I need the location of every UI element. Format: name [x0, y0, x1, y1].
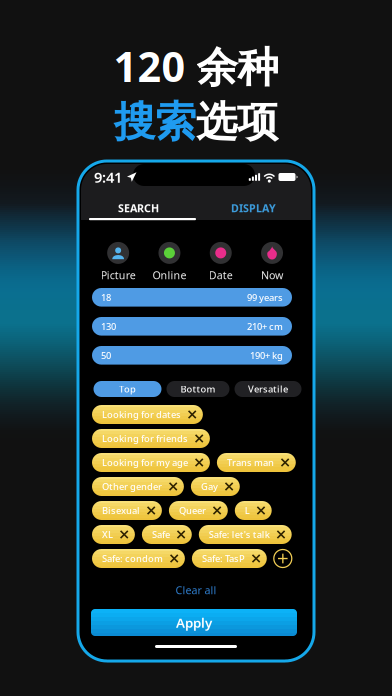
staticText: DISPLAY [231, 201, 276, 215]
button[interactable]: Add filter [274, 549, 292, 567]
staticText: 210+ cm [247, 320, 283, 332]
button[interactable]: Online [144, 245, 195, 279]
staticText: Top [119, 383, 136, 395]
button[interactable]: Bisexual [92, 501, 162, 520]
staticText: Online [152, 268, 186, 282]
staticText: Bisexual [102, 504, 140, 517]
staticText: Versatile [248, 383, 288, 395]
button[interactable]: Date [195, 245, 246, 279]
staticText: Looking for dates [102, 408, 181, 421]
staticText: SEARCH [118, 201, 159, 215]
staticText: Now [261, 268, 283, 282]
button[interactable]: Safe: TasP [192, 549, 267, 568]
button[interactable]: Safe: condom [92, 549, 185, 568]
staticText: Bottom [180, 383, 215, 395]
staticText: Picture [101, 268, 136, 282]
button[interactable]: Versatile [234, 381, 301, 397]
staticText: 50 [101, 349, 111, 361]
staticText: Looking for friends [102, 432, 188, 445]
button[interactable]: Bottom [166, 381, 229, 397]
staticText: 120 余种 [113, 39, 278, 93]
staticText: 130 [101, 320, 116, 332]
button[interactable]: Gay [191, 477, 240, 496]
staticText: 选项 [196, 97, 278, 147]
staticText: Date [209, 268, 233, 282]
staticText: Apply [176, 614, 212, 631]
button[interactable]: Clear all [81, 584, 311, 596]
button[interactable]: L [235, 501, 272, 520]
button[interactable]: 130 [92, 317, 292, 336]
button[interactable]: Looking for my age [92, 453, 210, 472]
button[interactable]: 50 [92, 346, 292, 365]
staticText: Safe: condom [102, 552, 163, 565]
button[interactable]: Picture [92, 245, 144, 279]
staticText: Gay [201, 480, 218, 493]
staticText: Safe: let's talk [209, 528, 270, 541]
button[interactable]: Queer [169, 501, 228, 520]
staticText: 99 years [247, 291, 283, 303]
button[interactable]: DISPLAY [196, 200, 311, 216]
staticText: Trans man [227, 456, 274, 469]
button[interactable]: Safe: let's talk [199, 525, 292, 544]
staticText: Safe [152, 528, 170, 541]
staticText: 190+ kg [250, 349, 283, 361]
staticText: 9:41 [94, 167, 122, 187]
button[interactable]: 18 [92, 288, 292, 307]
staticText: Clear all [175, 583, 216, 597]
button[interactable]: Other gender [92, 477, 184, 496]
staticText: XL [102, 528, 113, 541]
staticText: L [245, 504, 250, 517]
button[interactable]: Apply [91, 609, 297, 636]
button[interactable]: Looking for dates [92, 405, 203, 424]
button[interactable]: Now [246, 245, 298, 279]
staticText: 18 [101, 291, 111, 303]
button[interactable]: Top [93, 381, 161, 397]
button[interactable]: XL [92, 525, 135, 544]
button[interactable]: SEARCH [81, 200, 196, 216]
staticText: Looking for my age [102, 456, 188, 469]
button[interactable]: Trans man [217, 453, 296, 472]
staticText: Safe: TasP [202, 552, 245, 565]
button[interactable]: Looking for friends [92, 429, 210, 448]
staticText: 搜索 [114, 97, 196, 147]
staticText: Queer [179, 504, 206, 517]
button[interactable]: Safe [142, 525, 192, 544]
staticText: Other gender [102, 480, 162, 493]
